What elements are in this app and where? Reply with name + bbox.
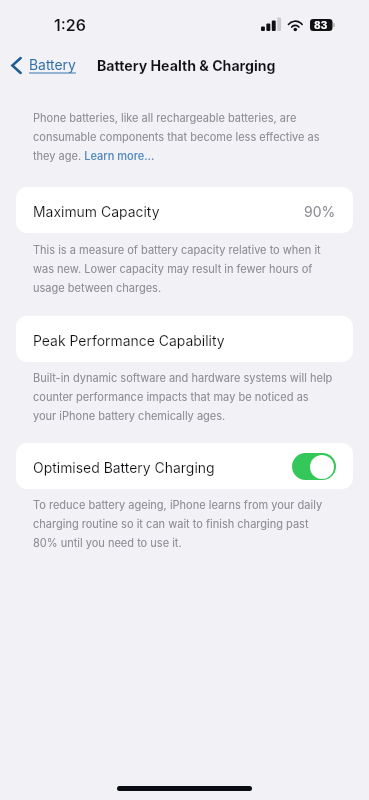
staticText: To reduce battery ageing, iPhone learns …: [33, 498, 333, 550]
other: Battery 83 percent: [310, 19, 334, 31]
button[interactable]: Battery: [0, 51, 84, 82]
button[interactable]: Maximum Capacity: [16, 187, 353, 233]
staticText: 90%: [304, 203, 336, 220]
staticText: Optimised Battery Charging: [33, 459, 215, 476]
staticText: Built-in dynamic software and hardware s…: [33, 371, 333, 423]
button[interactable]: Optimised Battery Charging switch: [292, 453, 336, 480]
other: Wi-Fi: [288, 18, 303, 30]
staticText: This is a measure of battery capacity re…: [33, 243, 333, 295]
other: Cellular signal: [261, 18, 281, 31]
staticText: Phone batteries, like all rechargeable b…: [33, 111, 333, 163]
staticText: 1:26: [54, 16, 86, 35]
button[interactable]: Peak Performance Capability: [16, 316, 353, 362]
staticText: Battery Health & Charging: [97, 57, 276, 74]
staticText: 83: [314, 19, 328, 31]
staticText: Maximum Capacity: [33, 203, 160, 220]
staticText: Battery: [29, 57, 76, 74]
staticText: Peak Performance Capability: [33, 332, 225, 349]
